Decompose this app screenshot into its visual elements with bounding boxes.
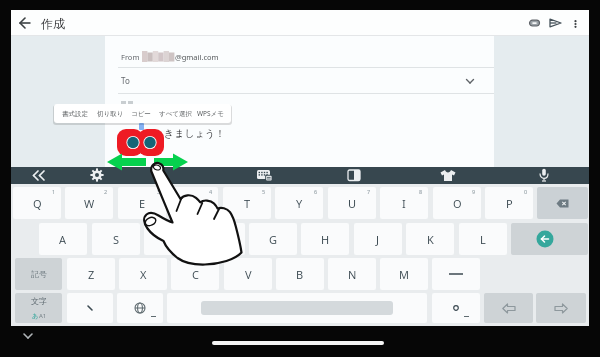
button[interactable]: S bbox=[92, 223, 140, 255]
button[interactable]: A bbox=[39, 223, 87, 255]
staticText: WPSメモ bbox=[197, 109, 224, 118]
staticText: A bbox=[59, 232, 67, 247]
button[interactable]: O bbox=[433, 187, 481, 219]
staticText: S bbox=[113, 232, 120, 247]
staticText: 8 bbox=[419, 188, 423, 195]
button[interactable] bbox=[432, 258, 480, 290]
staticText: 作成 bbox=[41, 16, 65, 31]
button[interactable] bbox=[167, 293, 427, 323]
staticText: K bbox=[427, 232, 434, 247]
button[interactable] bbox=[537, 187, 588, 219]
button[interactable]: G bbox=[249, 223, 297, 255]
button[interactable] bbox=[18, 16, 32, 30]
staticText: 書式設定 bbox=[62, 110, 88, 118]
button[interactable] bbox=[548, 16, 563, 30]
staticText: Z bbox=[88, 267, 95, 282]
button[interactable]: 切り取り bbox=[97, 104, 125, 123]
staticText: D bbox=[164, 232, 173, 247]
staticText: きましょう！ bbox=[164, 127, 226, 140]
button[interactable] bbox=[511, 223, 588, 255]
staticText: @gmail.com bbox=[175, 52, 219, 62]
staticText: I bbox=[402, 196, 406, 211]
button[interactable]: V bbox=[224, 258, 272, 290]
staticText: コピー bbox=[131, 110, 151, 118]
button[interactable]: J bbox=[354, 223, 402, 255]
staticText: 切り取り bbox=[97, 110, 124, 118]
button[interactable]: H bbox=[301, 223, 349, 255]
button[interactable]: R bbox=[170, 187, 218, 219]
button[interactable]: U bbox=[328, 187, 376, 219]
staticText: すべて選択 bbox=[159, 110, 192, 118]
button[interactable]: コピー bbox=[131, 104, 153, 123]
staticText: Y bbox=[296, 196, 303, 211]
staticText: M bbox=[399, 267, 409, 282]
button[interactable]: E bbox=[118, 187, 166, 219]
button[interactable]: Y bbox=[275, 187, 323, 219]
staticText: P bbox=[506, 196, 513, 211]
staticText: あ bbox=[32, 312, 39, 320]
staticText: 1 bbox=[52, 188, 56, 195]
staticText: T bbox=[244, 196, 251, 211]
staticText: From bbox=[121, 52, 140, 62]
staticText: H bbox=[321, 232, 330, 247]
button[interactable] bbox=[347, 169, 362, 182]
staticText: 4 bbox=[209, 188, 213, 195]
staticText: 3 bbox=[157, 188, 161, 195]
staticText: C bbox=[192, 267, 199, 282]
button[interactable]: F bbox=[197, 223, 245, 255]
button[interactable]: すべて選択 bbox=[159, 104, 193, 123]
staticText: G bbox=[269, 232, 278, 247]
button[interactable]: To bbox=[121, 70, 461, 90]
staticText: Q bbox=[33, 196, 42, 211]
staticText: 記号 bbox=[31, 269, 47, 279]
staticText: L bbox=[480, 232, 486, 247]
staticText: U bbox=[348, 196, 357, 211]
button[interactable]: L bbox=[459, 223, 507, 255]
staticText: O bbox=[453, 196, 462, 211]
button[interactable] bbox=[432, 293, 480, 323]
button[interactable]: P bbox=[485, 187, 533, 219]
staticText: A1 bbox=[39, 312, 47, 320]
button[interactable]: 文字 bbox=[15, 293, 62, 323]
button[interactable]: 記号 bbox=[15, 258, 62, 290]
button[interactable]: I bbox=[380, 187, 428, 219]
staticText: J bbox=[376, 232, 380, 247]
staticText: X bbox=[140, 267, 147, 282]
button[interactable]: B bbox=[276, 258, 324, 290]
button[interactable]: C bbox=[171, 258, 219, 290]
button[interactable] bbox=[570, 16, 582, 30]
staticText: B bbox=[296, 267, 304, 282]
staticText: N bbox=[348, 267, 357, 282]
button[interactable] bbox=[527, 16, 542, 30]
staticText: 7 bbox=[367, 188, 371, 195]
staticText: 6 bbox=[314, 188, 318, 195]
button[interactable]: N bbox=[328, 258, 376, 290]
staticText: R bbox=[191, 196, 198, 211]
staticText: 文字 bbox=[31, 296, 47, 306]
button[interactable]: WPSメモ bbox=[197, 104, 229, 123]
staticText: 2 bbox=[104, 188, 108, 195]
button[interactable] bbox=[538, 168, 550, 182]
button[interactable] bbox=[90, 168, 104, 182]
button[interactable]: M bbox=[380, 258, 428, 290]
button[interactable] bbox=[440, 169, 456, 182]
button[interactable] bbox=[536, 293, 586, 323]
button[interactable] bbox=[257, 169, 274, 182]
button[interactable] bbox=[117, 293, 163, 323]
staticText: 5 bbox=[262, 188, 266, 195]
button[interactable]: T bbox=[223, 187, 271, 219]
button[interactable] bbox=[67, 293, 113, 323]
button[interactable]: 書式設定 bbox=[62, 104, 92, 123]
staticText: W bbox=[84, 196, 95, 211]
button[interactable]: K bbox=[406, 223, 454, 255]
button[interactable]: Z bbox=[67, 258, 115, 290]
button[interactable] bbox=[31, 169, 47, 182]
button[interactable]: W bbox=[65, 187, 113, 219]
button[interactable] bbox=[22, 331, 34, 341]
button[interactable] bbox=[484, 293, 533, 323]
button[interactable]: X bbox=[119, 258, 167, 290]
staticText: V bbox=[245, 267, 252, 282]
button[interactable]: Q bbox=[13, 187, 61, 219]
button[interactable]: D bbox=[144, 223, 192, 255]
